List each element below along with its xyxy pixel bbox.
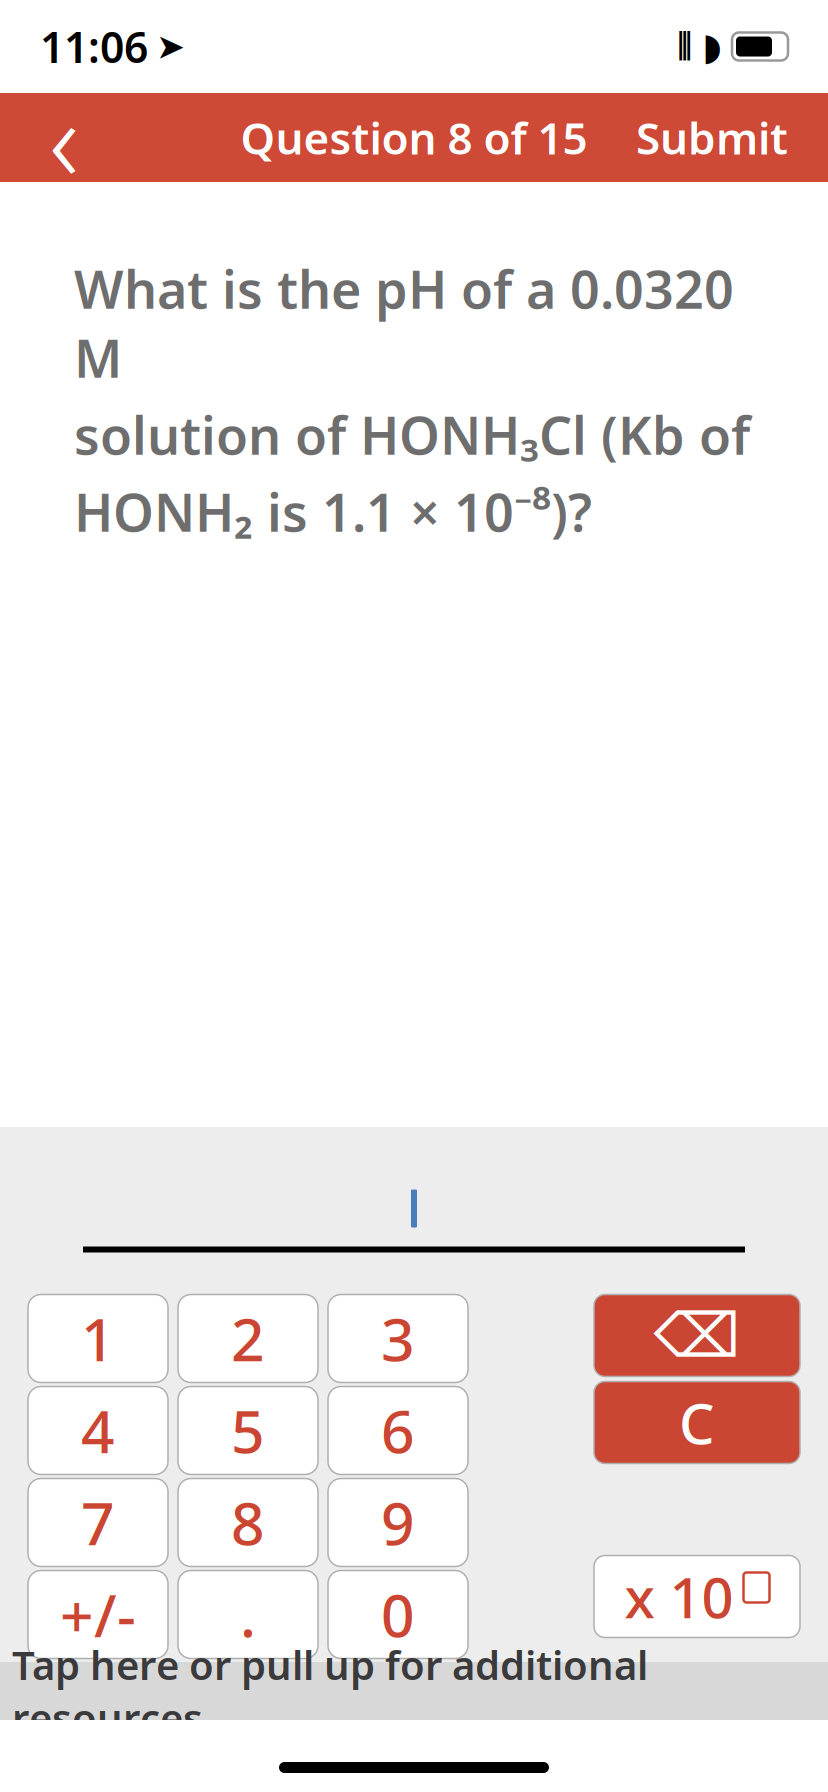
button[interactable]: Clear — [594, 1381, 800, 1463]
button[interactable]: Submit — [610, 93, 814, 182]
button[interactable]: 8 — [178, 1478, 318, 1566]
staticText: 8 — [231, 1483, 265, 1561]
button[interactable]: 7 — [28, 1478, 168, 1566]
button[interactable]: Times ten to the power — [594, 1555, 800, 1637]
staticText: 11:06 — [40, 18, 148, 75]
staticText: What is the pH of a 0.0320 M — [74, 254, 734, 392]
button[interactable]: Tap here or pull up for additional resou… — [0, 1662, 828, 1720]
button[interactable]: 1 — [28, 1294, 168, 1382]
button[interactable]: 6 — [328, 1386, 468, 1474]
button[interactable]: 2 — [178, 1294, 318, 1382]
staticText: ⦀ — [677, 30, 692, 63]
staticText: 0 — [381, 1575, 415, 1653]
button[interactable]: Back — [14, 93, 114, 182]
staticText: ⌫ — [653, 1301, 740, 1370]
staticText: 2 — [231, 1299, 265, 1377]
staticText: ‹ — [49, 61, 79, 214]
staticText: 5 — [231, 1391, 265, 1469]
staticText: . — [240, 1575, 256, 1653]
staticText: 1 — [81, 1299, 115, 1377]
button[interactable]: +/- — [28, 1570, 168, 1658]
staticText: solution of HONH₃Cl (Kb of — [74, 400, 750, 469]
staticText: x 10 — [624, 1559, 733, 1634]
staticText: 3 — [381, 1299, 415, 1377]
staticText: +/- — [60, 1575, 136, 1653]
staticText: ➤ — [156, 27, 185, 66]
staticText: ◗ — [702, 25, 722, 68]
staticText: Tap here or pull up for additional resou… — [12, 1638, 648, 1744]
button[interactable]: 3 — [328, 1294, 468, 1382]
staticText: 9 — [381, 1483, 415, 1561]
staticText: Submit — [636, 108, 788, 167]
button[interactable]: . — [178, 1570, 318, 1658]
staticText: 7 — [81, 1483, 115, 1561]
staticText: 4 — [81, 1391, 115, 1469]
staticText: Question 8 of 15 — [240, 108, 587, 167]
button[interactable]: 0 — [328, 1570, 468, 1658]
button[interactable]: 4 — [28, 1386, 168, 1474]
button[interactable]: Backspace — [594, 1294, 800, 1376]
staticText: HONH₂ is 1.1 × 10⁻⁸)? — [74, 477, 592, 546]
staticText: C — [679, 1385, 715, 1460]
button[interactable]: 9 — [328, 1478, 468, 1566]
staticText: 6 — [381, 1391, 415, 1469]
button[interactable]: 5 — [178, 1386, 318, 1474]
